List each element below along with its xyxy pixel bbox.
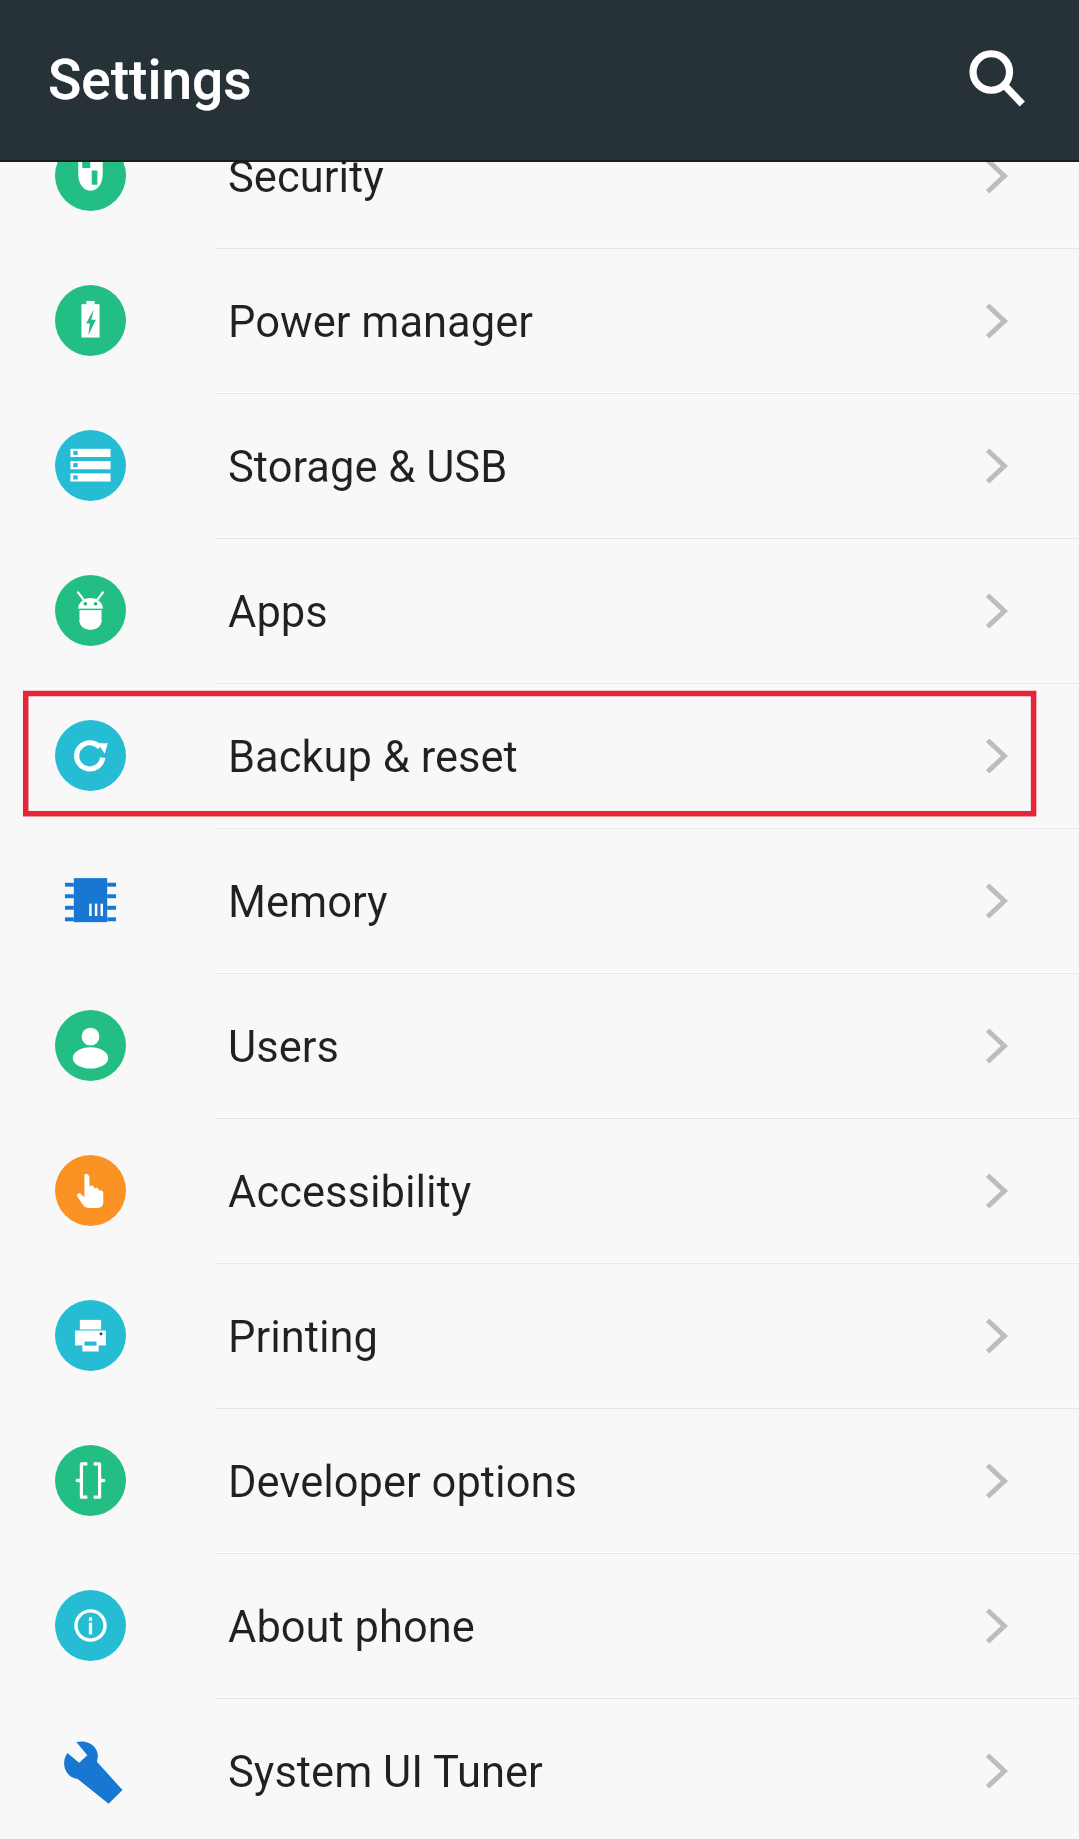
staticText: About phone bbox=[228, 1602, 475, 1653]
staticText: Printing bbox=[228, 1312, 379, 1363]
staticText: Backup & reset bbox=[228, 732, 518, 783]
staticText: Storage & USB bbox=[228, 442, 508, 493]
button[interactable]: About phone bbox=[0, 1554, 1079, 1697]
button[interactable]: Developer options bbox=[0, 1409, 1079, 1552]
button[interactable]: Users bbox=[0, 974, 1079, 1117]
staticText: System UI Tuner bbox=[228, 1747, 543, 1798]
staticText: Settings bbox=[48, 48, 252, 112]
button[interactable]: Printing bbox=[0, 1264, 1079, 1407]
staticText: Apps bbox=[228, 587, 328, 638]
staticText: Developer options bbox=[228, 1457, 577, 1508]
staticText: Power manager bbox=[228, 297, 533, 348]
button[interactable]: Apps bbox=[0, 539, 1079, 682]
staticText: Accessibility bbox=[228, 1167, 472, 1218]
staticText: Users bbox=[228, 1022, 339, 1073]
button[interactable]: Storage & USB bbox=[0, 394, 1079, 537]
button[interactable]: Accessibility bbox=[0, 1119, 1079, 1262]
button[interactable]: Power manager bbox=[0, 249, 1079, 392]
button[interactable]: System UI Tuner bbox=[0, 1699, 1079, 1839]
button[interactable]: Security bbox=[0, 104, 1079, 247]
button[interactable]: Backup & reset bbox=[0, 684, 1079, 827]
staticText: Memory bbox=[228, 877, 388, 928]
staticText: Security bbox=[228, 152, 384, 203]
button[interactable]: Memory bbox=[0, 829, 1079, 972]
button[interactable]: Search bbox=[950, 32, 1046, 128]
